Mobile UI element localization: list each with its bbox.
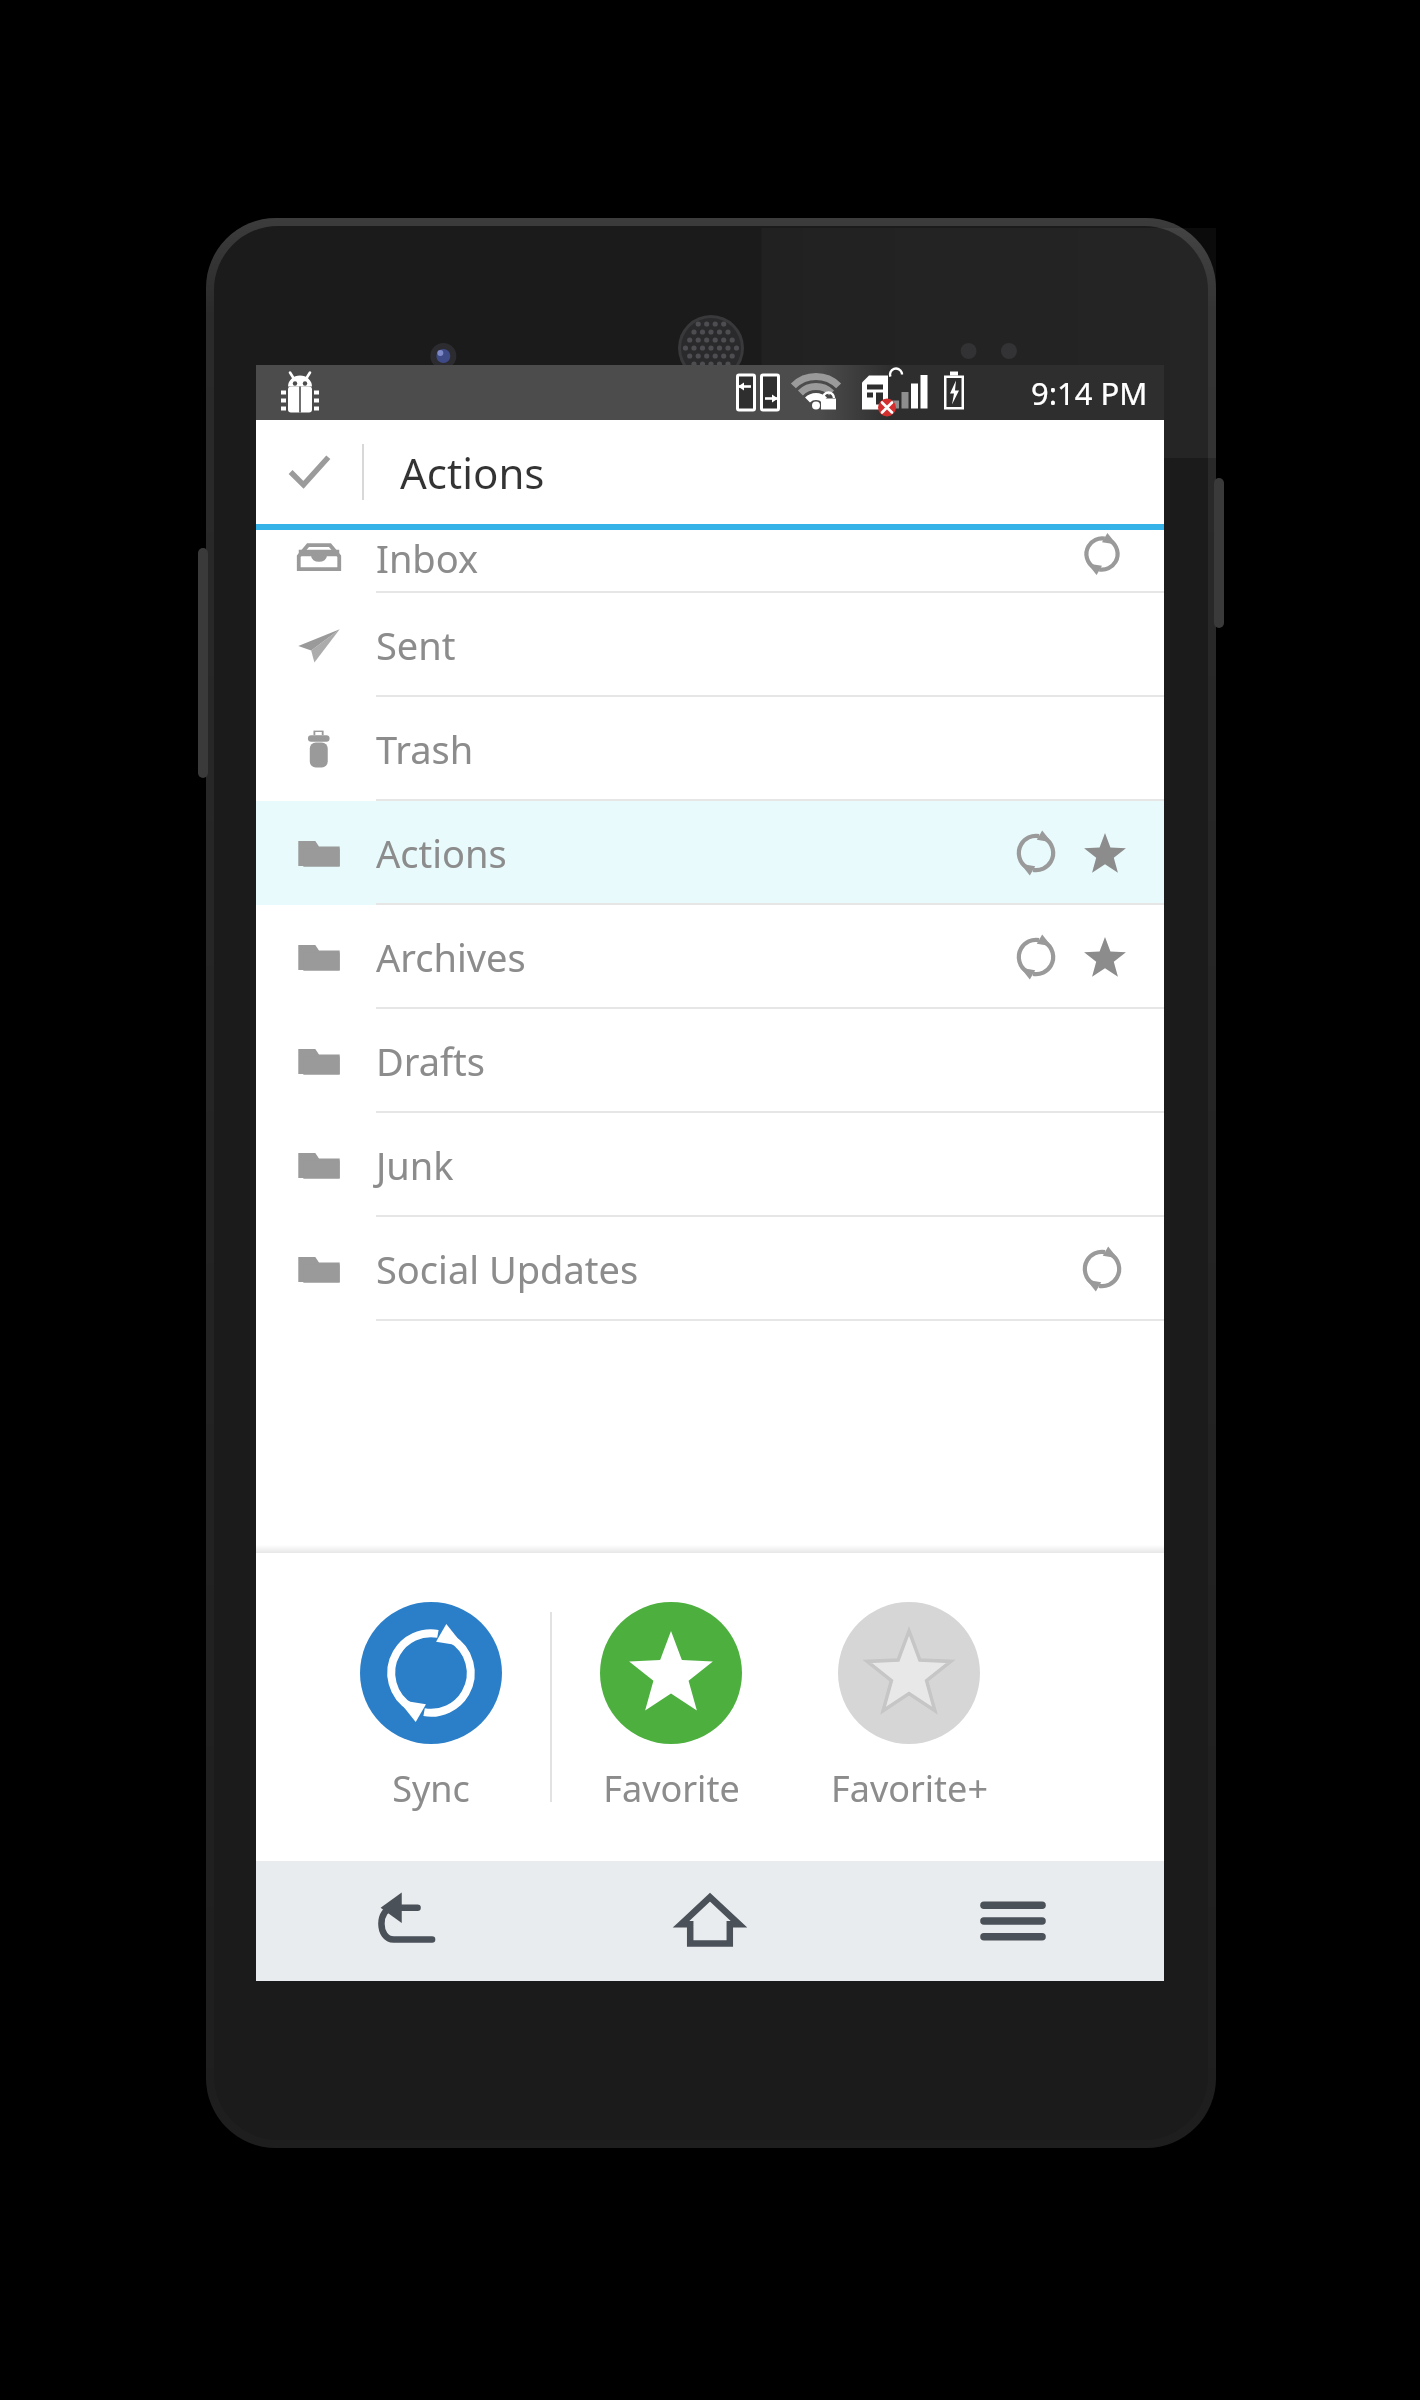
button[interactable]: Junk bbox=[256, 1113, 1164, 1217]
button[interactable]: Home bbox=[558, 1861, 861, 1981]
button[interactable]: Done bbox=[256, 420, 362, 524]
button[interactable]: Back bbox=[256, 1861, 558, 1981]
button[interactable]: Sync Social Updates bbox=[1066, 1233, 1138, 1305]
button[interactable]: Archives bbox=[256, 905, 1164, 1009]
staticText: Trash bbox=[376, 723, 474, 775]
button[interactable]: Favorite bbox=[552, 1553, 790, 1861]
button[interactable]: Actions bbox=[256, 801, 1164, 905]
staticText: Favorite+ bbox=[831, 1764, 988, 1813]
button[interactable]: Sent bbox=[256, 593, 1164, 697]
staticText: Sent bbox=[376, 619, 456, 671]
button[interactable]: Sync Actions bbox=[1000, 817, 1072, 889]
staticText: Social Updates bbox=[376, 1243, 639, 1295]
button[interactable]: Social Updates bbox=[256, 1217, 1164, 1321]
button[interactable]: Drafts bbox=[256, 1009, 1164, 1113]
button[interactable]: Favorite+ bbox=[790, 1553, 1028, 1861]
staticText: Actions bbox=[400, 444, 545, 501]
staticText: Archives bbox=[376, 931, 526, 983]
staticText: Junk bbox=[376, 1139, 454, 1191]
button[interactable]: Inbox bbox=[256, 530, 1164, 593]
button[interactable]: Favorite Actions bbox=[1072, 820, 1138, 886]
button[interactable]: Trash bbox=[256, 697, 1164, 801]
button[interactable]: Recents bbox=[861, 1861, 1164, 1981]
staticText: Favorite bbox=[603, 1764, 740, 1813]
button[interactable]: Sync Inbox bbox=[1066, 530, 1138, 593]
staticText: Drafts bbox=[376, 1035, 485, 1087]
staticText: 9:14 PM bbox=[1031, 372, 1148, 414]
staticText: Inbox bbox=[376, 532, 479, 584]
staticText: Sync bbox=[392, 1764, 470, 1813]
staticText: Actions bbox=[376, 827, 507, 879]
button[interactable]: Sync bbox=[312, 1553, 550, 1861]
button[interactable]: Sync Archives bbox=[1000, 921, 1072, 993]
button[interactable]: Favorite Archives bbox=[1072, 924, 1138, 990]
